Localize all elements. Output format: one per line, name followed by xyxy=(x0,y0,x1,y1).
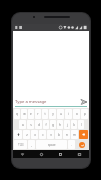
staticText: t xyxy=(44,112,46,116)
button[interactable]: m xyxy=(71,130,78,139)
button[interactable]: u xyxy=(57,109,64,119)
staticText: k xyxy=(73,123,75,127)
button[interactable]: h xyxy=(57,120,63,129)
staticText: b xyxy=(58,133,60,137)
staticText: space xyxy=(48,143,56,147)
button[interactable]: f xyxy=(43,120,49,129)
staticText: d xyxy=(38,123,40,127)
button[interactable]: Send xyxy=(80,98,88,106)
staticText: q xyxy=(16,112,18,116)
button[interactable]: w xyxy=(21,109,27,119)
button[interactable]: l xyxy=(78,120,84,129)
button[interactable]: Type a message xyxy=(15,98,80,106)
staticText: . xyxy=(71,142,72,147)
button[interactable]: s xyxy=(27,120,34,129)
staticText: g xyxy=(52,123,54,127)
staticText: m xyxy=(73,133,76,137)
button[interactable]: q xyxy=(14,109,20,119)
button[interactable]: r xyxy=(35,109,41,119)
button[interactable]: b xyxy=(55,130,62,139)
staticText: n xyxy=(66,133,68,137)
staticText: Type a message xyxy=(15,99,47,105)
button[interactable]: Back xyxy=(13,150,32,158)
button[interactable]: g xyxy=(50,120,56,129)
button[interactable]: Home xyxy=(32,150,51,158)
button[interactable]: Recents xyxy=(51,150,70,158)
staticText: y xyxy=(52,112,54,116)
button[interactable]: Backspace xyxy=(79,130,88,139)
staticText: , xyxy=(31,142,32,147)
staticText: ?123 xyxy=(18,143,24,147)
staticText: z xyxy=(26,133,28,137)
button[interactable]: Comma xyxy=(28,140,35,149)
staticText: w xyxy=(23,112,26,116)
button[interactable]: v xyxy=(47,130,54,139)
button[interactable]: p xyxy=(81,109,88,119)
staticText: s xyxy=(30,123,32,127)
staticText: v xyxy=(50,133,52,137)
button[interactable]: Space xyxy=(36,140,67,149)
button[interactable]: j xyxy=(64,120,70,129)
button[interactable]: x xyxy=(31,130,38,139)
button[interactable]: Enter xyxy=(79,142,85,148)
staticText: f xyxy=(45,123,47,127)
button[interactable]: e xyxy=(28,109,34,119)
staticText: e xyxy=(30,112,32,116)
staticText: i xyxy=(68,112,69,116)
button[interactable]: Change keyboard xyxy=(70,150,89,158)
staticText: u xyxy=(60,112,62,116)
button[interactable]: a xyxy=(19,120,26,129)
button[interactable]: z xyxy=(23,130,30,139)
button[interactable]: t xyxy=(42,109,48,119)
button[interactable]: Shift xyxy=(14,130,22,139)
staticText: r xyxy=(37,112,39,116)
button[interactable]: c xyxy=(39,130,46,139)
staticText: x xyxy=(34,133,36,137)
button[interactable]: n xyxy=(63,130,70,139)
button[interactable]: k xyxy=(71,120,77,129)
staticText: j xyxy=(67,123,68,127)
button[interactable]: i xyxy=(65,109,72,119)
staticText: l xyxy=(81,123,82,127)
staticText: p xyxy=(84,112,86,116)
button[interactable]: Symbols xyxy=(14,140,27,149)
button[interactable]: o xyxy=(73,109,80,119)
staticText: h xyxy=(59,123,61,127)
button[interactable]: y xyxy=(49,109,56,119)
staticText: c xyxy=(42,133,44,137)
staticText: a xyxy=(22,123,24,127)
staticText: o xyxy=(76,112,78,116)
button[interactable]: d xyxy=(35,120,42,129)
